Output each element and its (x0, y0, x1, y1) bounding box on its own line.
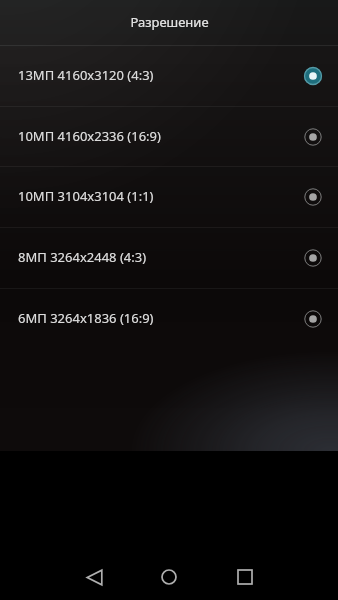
staticText: 6МП 3264x1836 (16:9) (18, 309, 154, 327)
staticText: 8МП 3264x2448 (4:3) (18, 248, 147, 266)
button[interactable]: 10МП 3104x3104 (1:1) (0, 167, 338, 227)
button[interactable]: Back (72, 555, 116, 599)
button[interactable]: 10МП 4160x2336 (16:9) (0, 107, 338, 166)
staticText: 13МП 4160x3120 (4:3) (18, 66, 154, 84)
button[interactable]: 13МП 4160x3120 (4:3) (0, 46, 338, 106)
button[interactable]: 8МП 3264x2448 (4:3) (0, 228, 338, 288)
button[interactable]: 6МП 3264x1836 (16:9) (0, 289, 338, 348)
button[interactable]: Recents (223, 555, 267, 599)
staticText: 10МП 3104x3104 (1:1) (18, 187, 154, 205)
button[interactable]: Home (147, 555, 191, 599)
staticText: 10МП 4160x2336 (16:9) (18, 127, 161, 145)
staticText: Разрешение (130, 13, 209, 31)
